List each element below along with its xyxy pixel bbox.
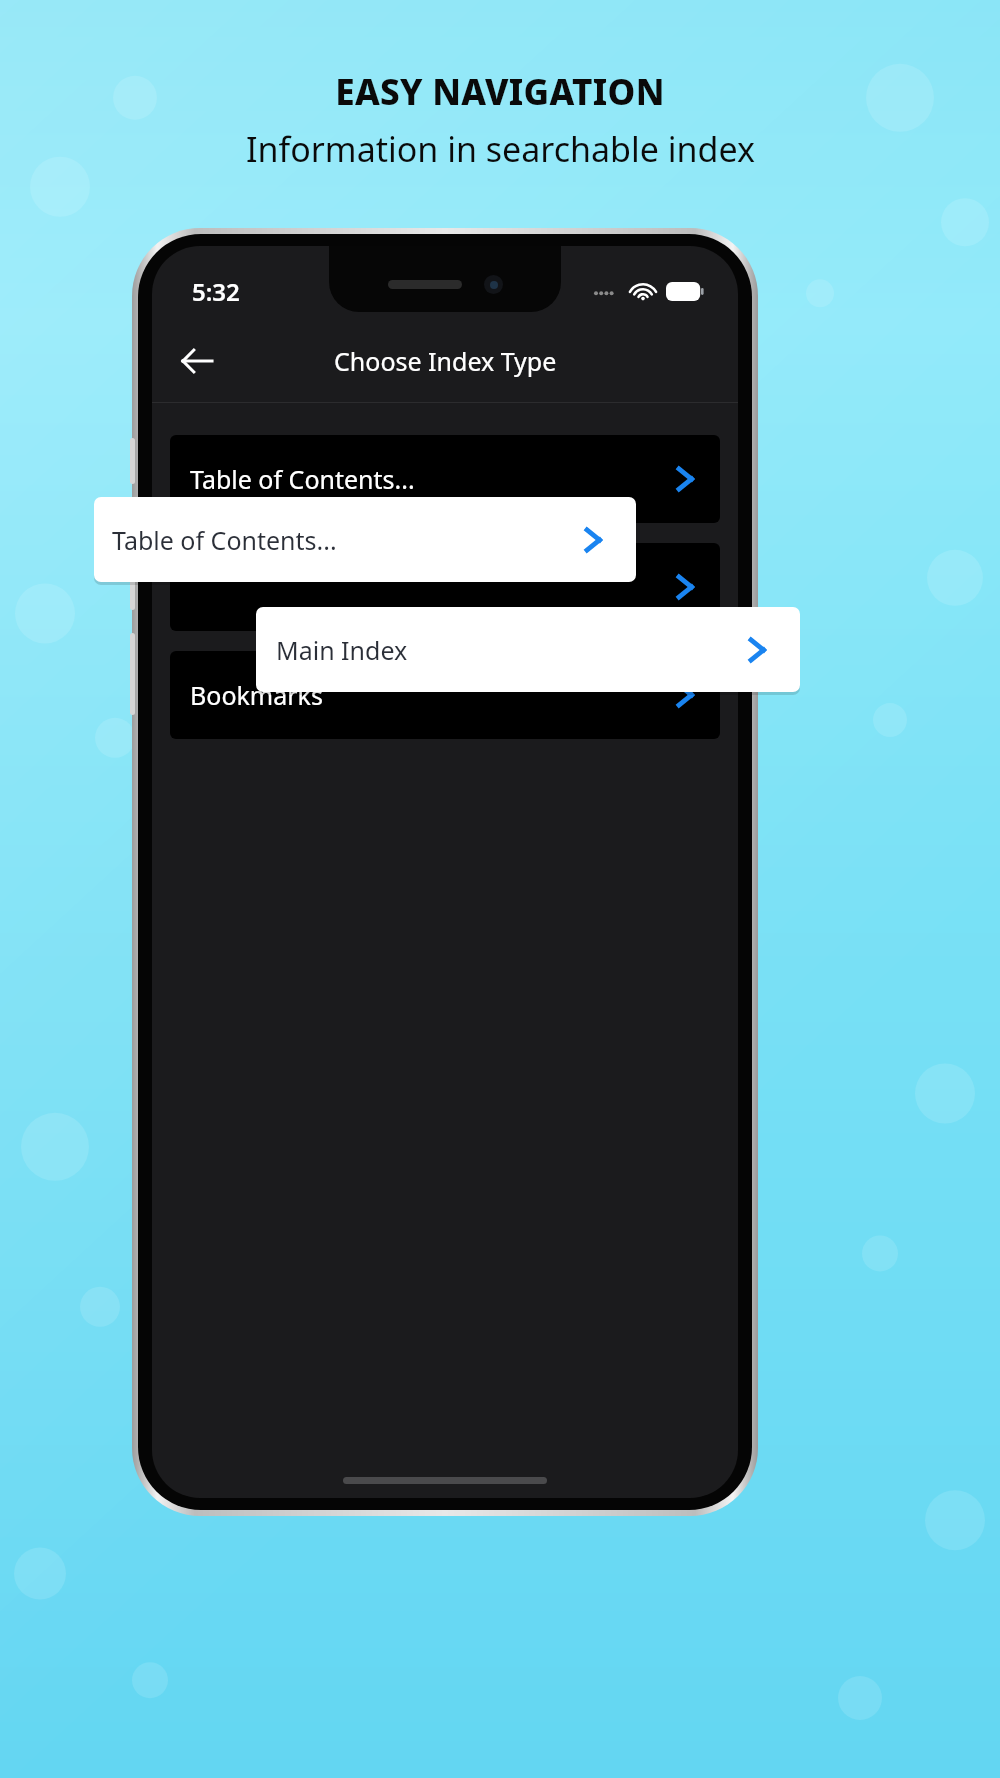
button[interactable]: Table of Contents... — [170, 435, 720, 523]
staticText: Information in searchable index — [246, 126, 755, 172]
staticText: EASY NAVIGATION — [335, 68, 665, 116]
staticText: Bookmarks — [190, 678, 323, 712]
button[interactable]: Bookmarks — [170, 651, 720, 739]
staticText: Main Index — [276, 633, 408, 667]
staticText: Table of Contents... — [190, 462, 415, 496]
staticText: Table of Contents... — [112, 523, 337, 557]
button[interactable] — [170, 543, 720, 631]
staticText: Choose Index Type — [334, 344, 557, 378]
button[interactable]: Back — [168, 332, 226, 390]
button[interactable]: Main Index — [256, 607, 800, 692]
staticText: 5:32 — [192, 275, 240, 308]
button[interactable]: Table of Contents... — [94, 497, 636, 582]
